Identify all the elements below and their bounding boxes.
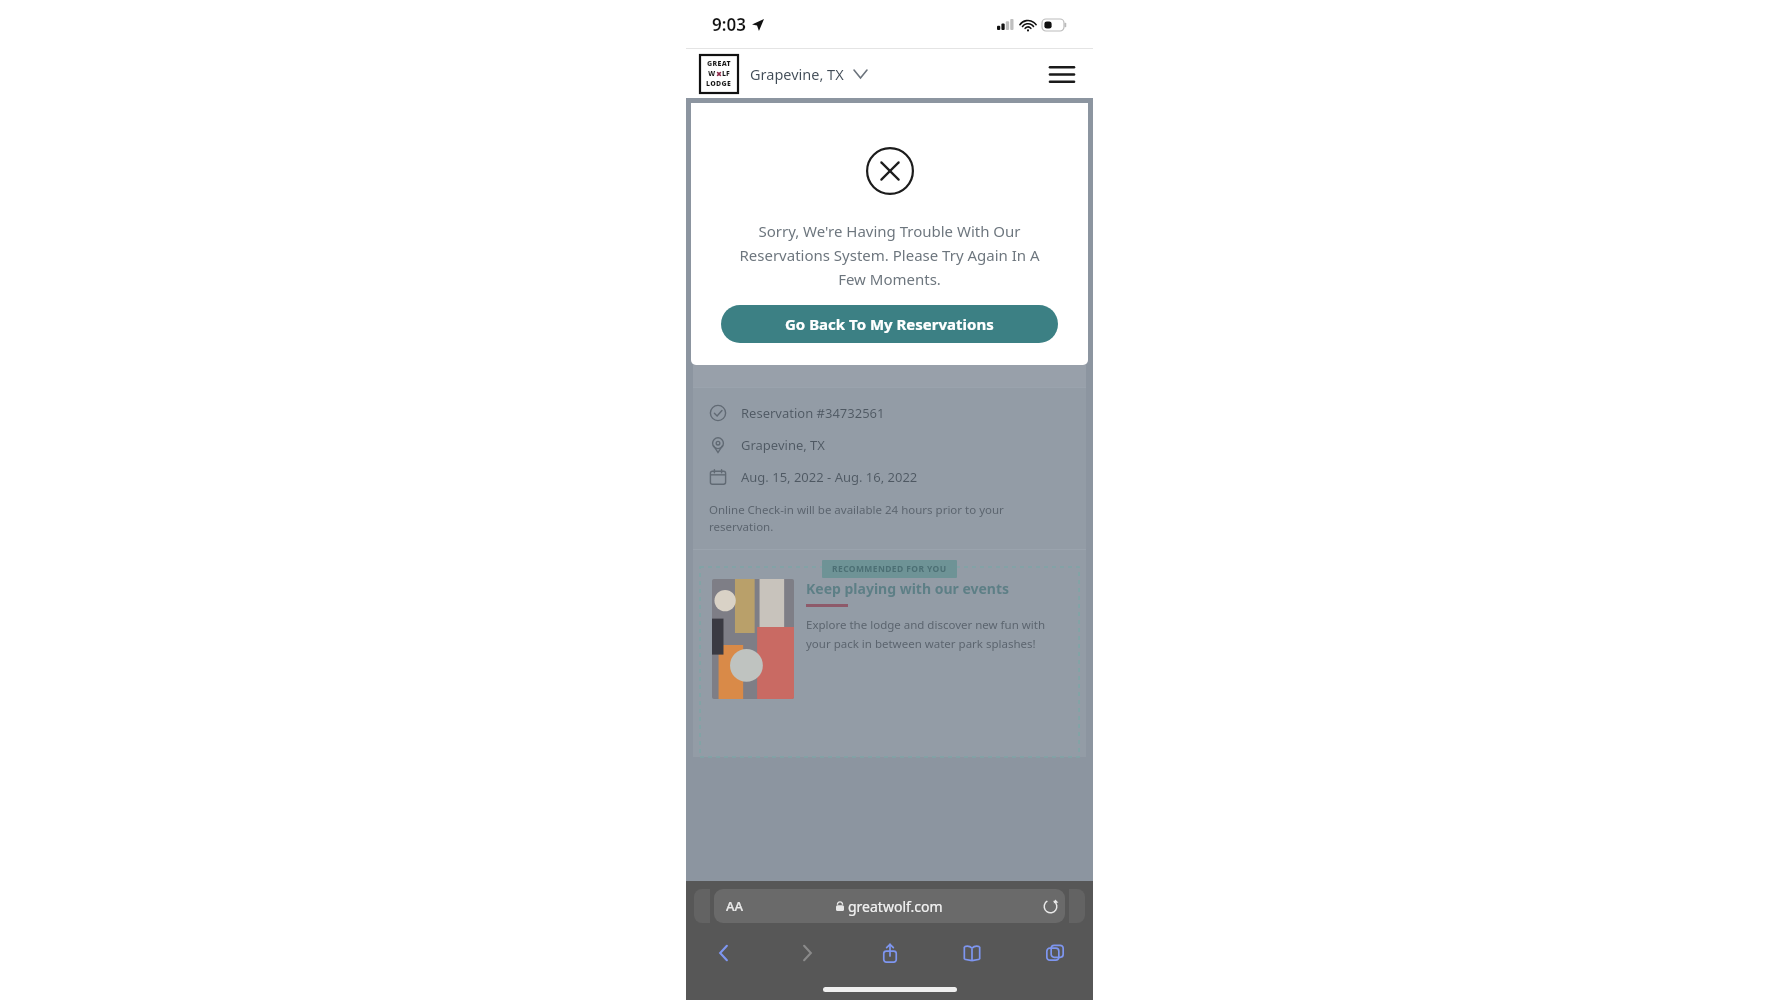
- button[interactable]: Great Wolf Lodge home: [700, 55, 738, 93]
- button[interactable]: Go Back To My Reservations: [721, 305, 1058, 343]
- button[interactable]: Bookmarks: [952, 933, 992, 973]
- staticText: Grapevine, TX: [750, 64, 844, 84]
- button[interactable]: Menu: [1045, 57, 1079, 91]
- staticText: RECOMMENDED FOR YOU: [832, 563, 947, 575]
- staticText: LF: [722, 69, 730, 79]
- staticText: Reservation #34732561: [741, 404, 885, 422]
- button[interactable]: Reload: [1035, 891, 1065, 921]
- button[interactable]: Tabs: [1035, 933, 1075, 973]
- staticText: greatwolf.com: [848, 897, 943, 916]
- button[interactable]: Forward: [787, 933, 827, 973]
- staticText: LODGE: [706, 79, 732, 89]
- staticText: GREAT: [707, 59, 731, 69]
- button[interactable]: Grapevine, TX: [748, 58, 869, 90]
- button[interactable]: AA: [714, 889, 1065, 923]
- staticText: Go Back To My Reservations: [785, 314, 994, 334]
- staticText: W: [708, 69, 716, 79]
- button[interactable]: Keep playing with our events: [700, 567, 1079, 757]
- staticText: Keep playing with our events: [806, 579, 1010, 598]
- staticText: AA: [726, 897, 744, 915]
- staticText: Sorry, We're Having Trouble With Our Res…: [729, 221, 1050, 289]
- staticText: Online Check-in will be available 24 hou…: [709, 502, 1070, 535]
- staticText: 9:03: [712, 13, 746, 36]
- staticText: Grapevine, TX: [741, 436, 825, 454]
- button[interactable]: Back: [704, 933, 744, 973]
- staticText: Aug. 15, 2022 - Aug. 16, 2022: [741, 468, 918, 486]
- staticText: Explore the lodge and discover new fun w…: [806, 617, 1067, 651]
- button[interactable]: Share: [870, 933, 910, 973]
